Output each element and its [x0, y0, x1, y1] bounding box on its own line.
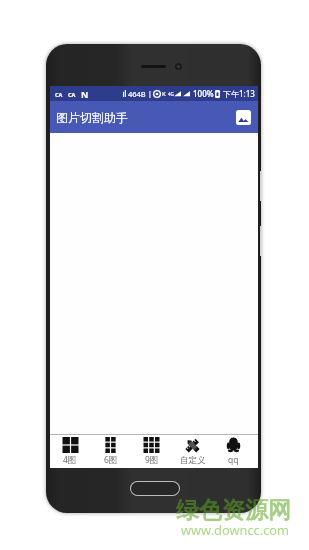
button[interactable]: Home: [131, 482, 179, 495]
button[interactable]: qq: [213, 435, 254, 468]
staticText: 464B: [128, 89, 146, 99]
staticText: CA: [55, 91, 63, 98]
staticText: 9图: [145, 454, 159, 466]
staticText: |: [148, 89, 152, 99]
staticText: 4G: [168, 91, 174, 97]
staticText: qq: [228, 454, 239, 466]
button[interactable]: 9图: [131, 435, 172, 468]
button[interactable]: 6图: [90, 435, 131, 468]
staticText: CA: [68, 91, 76, 98]
staticText: N: [81, 88, 89, 100]
staticText: 4图: [63, 454, 77, 466]
staticText: 6图: [104, 454, 118, 466]
button[interactable]: 4图: [50, 435, 90, 468]
staticText: 100%: [193, 88, 214, 99]
staticText: www.downcc.com: [181, 521, 289, 538]
staticText: 图片切割助手: [56, 110, 128, 125]
button[interactable]: Pictures: [236, 110, 251, 125]
staticText: 自定义: [180, 455, 206, 466]
staticText: 绿色资源网: [176, 496, 291, 525]
staticText: K: [162, 90, 166, 98]
staticText: 下午1:13: [223, 88, 255, 99]
button[interactable]: 自定义: [172, 435, 213, 468]
